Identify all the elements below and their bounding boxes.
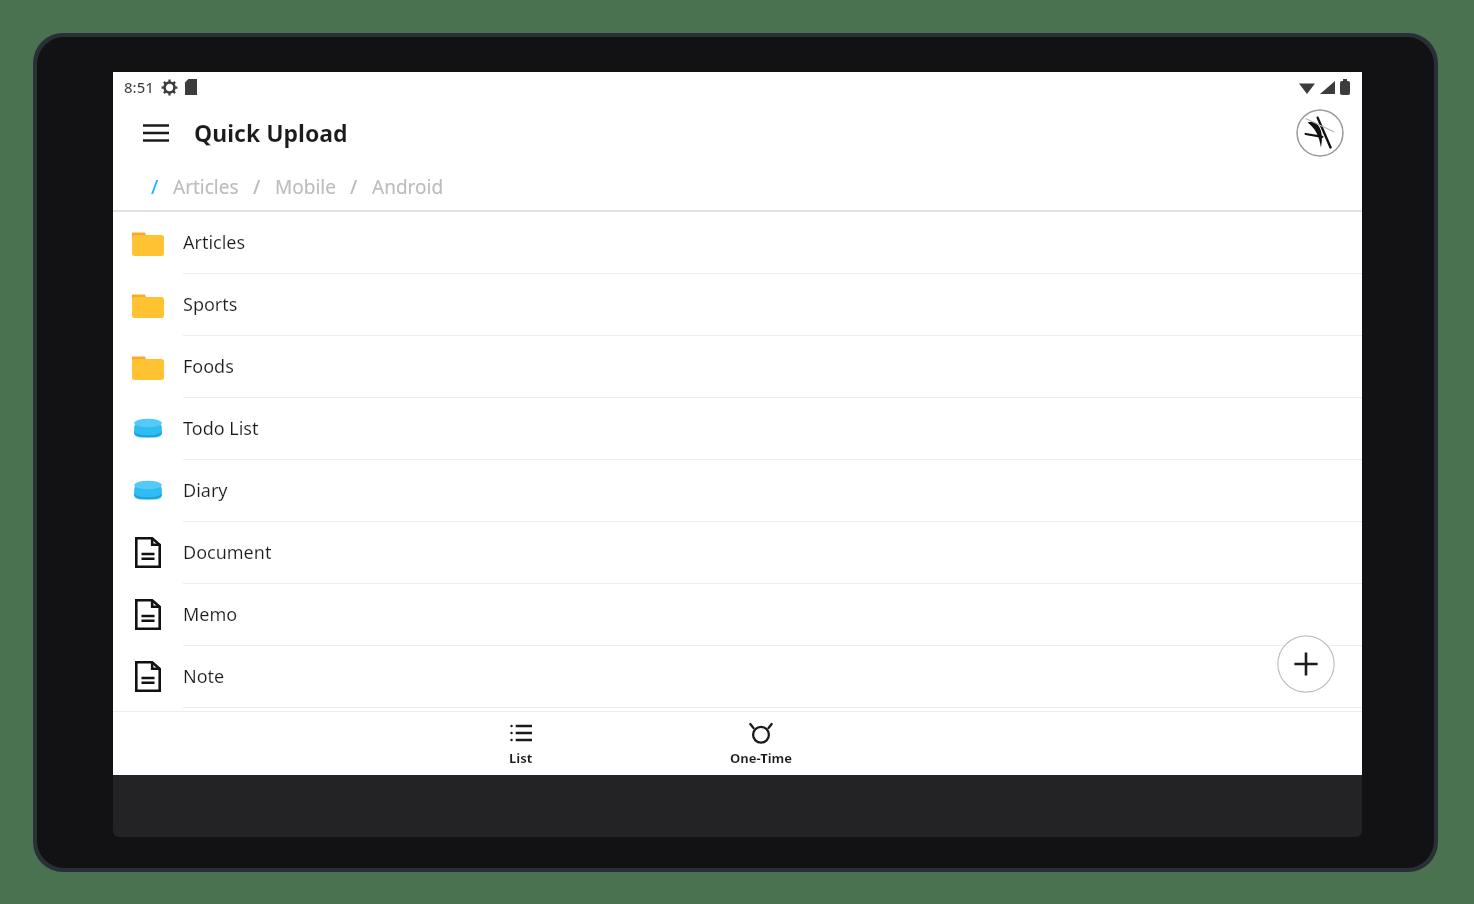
button[interactable]: Menu bbox=[134, 111, 178, 155]
staticText: Document bbox=[183, 540, 272, 565]
staticText: Android bbox=[372, 174, 444, 200]
staticText: Articles bbox=[173, 174, 239, 200]
staticText: Todo List bbox=[183, 416, 259, 441]
button[interactable]: Profile bbox=[1296, 109, 1344, 157]
button[interactable]: Diary bbox=[113, 460, 1362, 522]
button[interactable]: Add bbox=[1277, 635, 1335, 693]
button[interactable]: Mobile bbox=[275, 174, 336, 200]
button[interactable]: Articles bbox=[113, 212, 1362, 274]
staticText: Quick Upload bbox=[194, 117, 348, 148]
button[interactable]: Memo bbox=[113, 584, 1362, 646]
staticText: / bbox=[151, 174, 159, 200]
staticText: One-Time bbox=[730, 749, 792, 767]
button[interactable]: Articles bbox=[173, 174, 239, 200]
staticText: Articles bbox=[183, 230, 246, 255]
staticText: Note bbox=[183, 664, 225, 689]
staticText: 8:51 bbox=[124, 77, 154, 97]
staticText: / bbox=[253, 174, 261, 200]
button[interactable]: Foods bbox=[113, 336, 1362, 398]
staticText: / bbox=[350, 174, 358, 200]
button[interactable]: Document bbox=[113, 522, 1362, 584]
staticText: Foods bbox=[183, 354, 234, 379]
button[interactable]: List bbox=[462, 712, 580, 775]
button[interactable]: Sports bbox=[113, 274, 1362, 336]
button[interactable]: Todo List bbox=[113, 398, 1362, 460]
button[interactable]: Android bbox=[372, 174, 444, 200]
staticText: Mobile bbox=[275, 174, 336, 200]
staticText: Memo bbox=[183, 602, 238, 627]
button[interactable]: One-Time bbox=[702, 712, 820, 775]
staticText: List bbox=[509, 749, 533, 767]
button[interactable]: Note bbox=[113, 646, 1362, 708]
staticText: Sports bbox=[183, 292, 238, 317]
staticText: Diary bbox=[183, 478, 228, 503]
